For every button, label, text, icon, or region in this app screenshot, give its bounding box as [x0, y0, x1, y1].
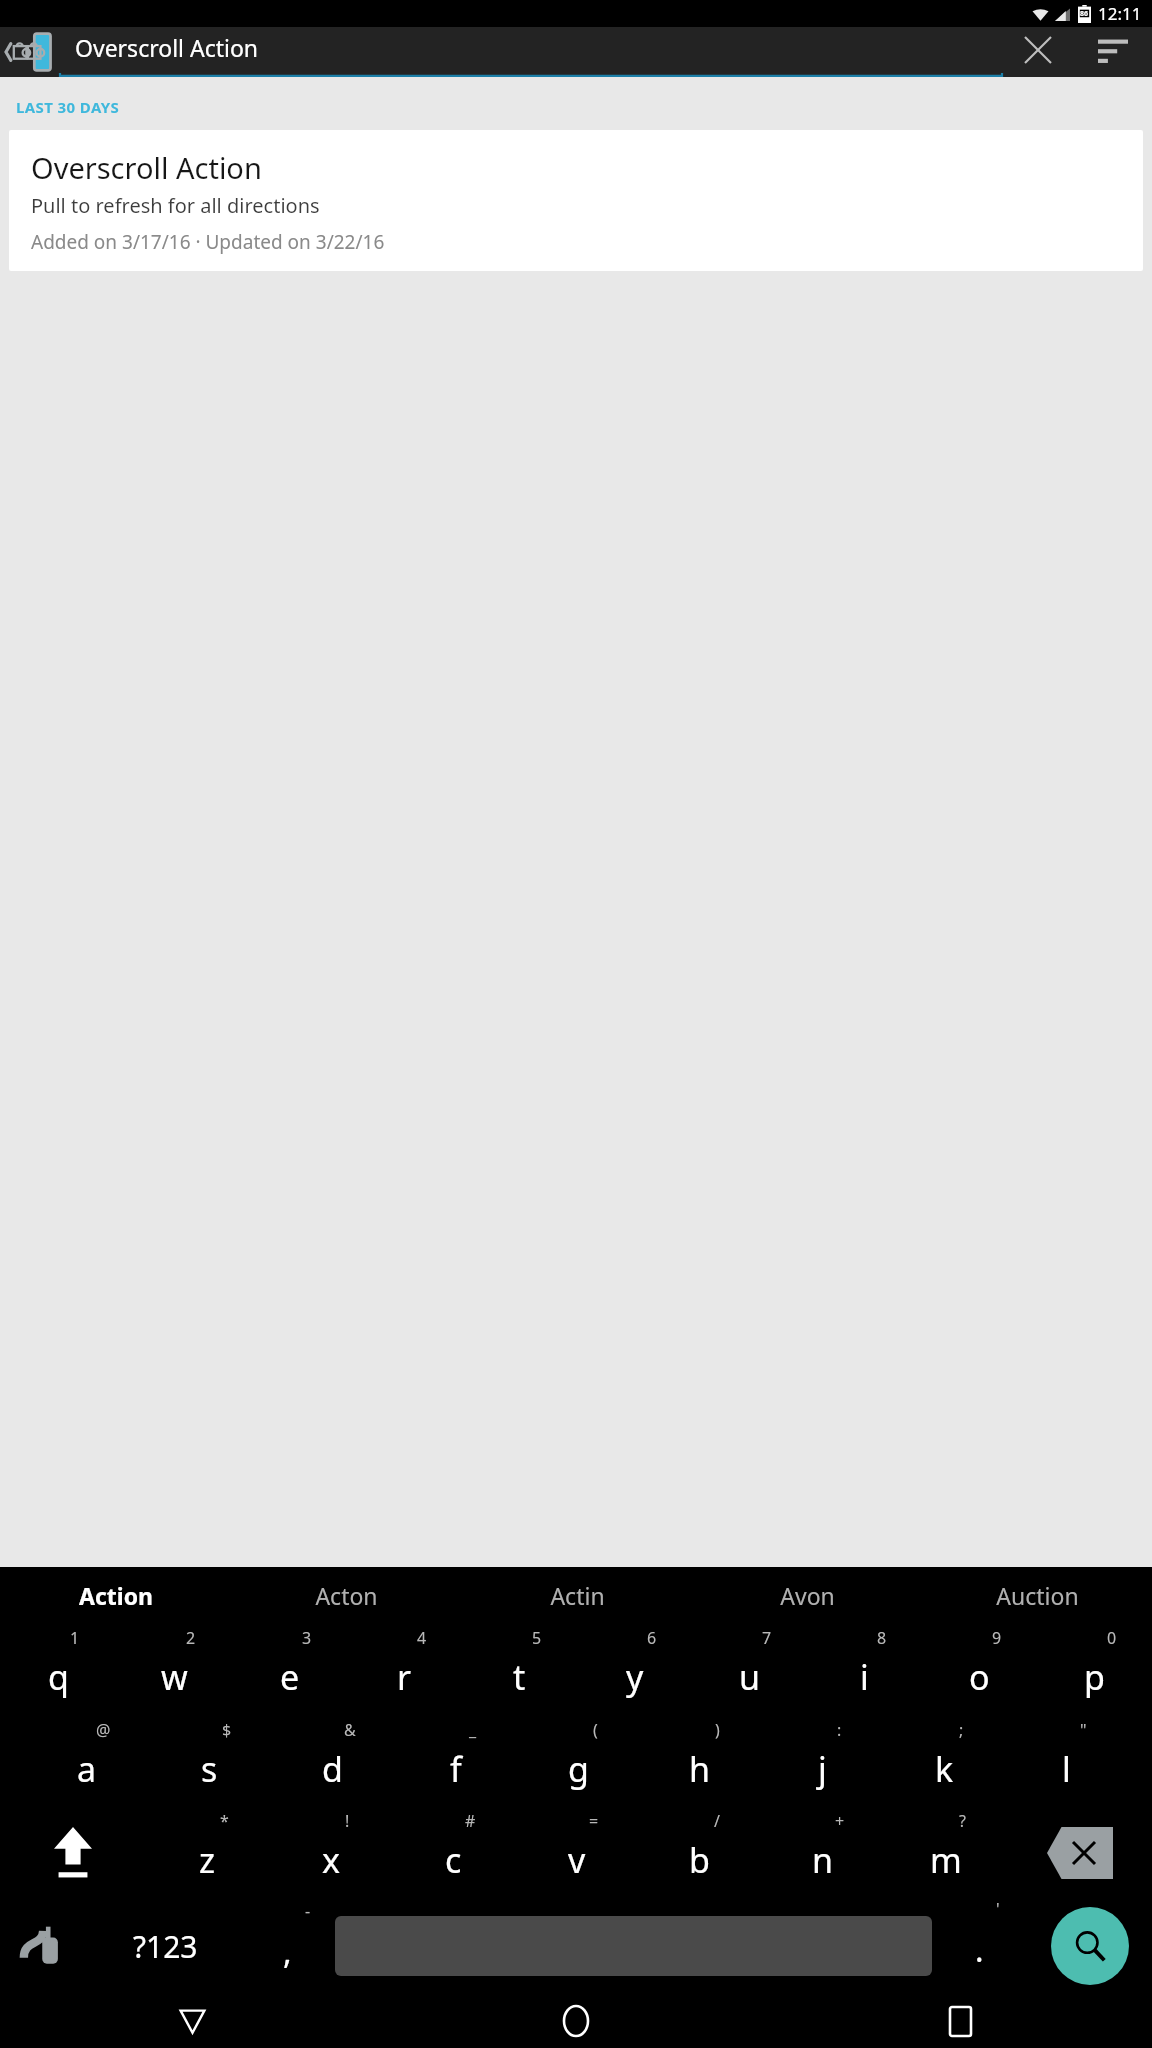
staticText: p [1084, 1654, 1105, 1700]
button[interactable]: Recents [768, 1994, 1152, 2048]
staticText: f [450, 1746, 462, 1792]
button[interactable]: 5 [462, 1624, 577, 1716]
button[interactable]: 2 [116, 1624, 232, 1716]
staticText: e [280, 1654, 300, 1700]
staticText: 86 [1080, 9, 1089, 19]
button[interactable]: : [761, 1716, 883, 1807]
staticText: . [975, 1928, 984, 1972]
staticText: Auction [996, 1580, 1079, 1611]
staticText: 9 [992, 1627, 1002, 1649]
button[interactable]: 4 [347, 1624, 462, 1716]
button[interactable]: " [1005, 1716, 1127, 1807]
button[interactable]: 8 [807, 1624, 922, 1716]
staticText: ' [996, 1898, 1000, 1920]
staticText: a [77, 1746, 97, 1792]
staticText: w [161, 1654, 188, 1700]
button[interactable]: & [271, 1716, 394, 1807]
staticText: 3 [302, 1627, 312, 1649]
staticText: m [930, 1837, 962, 1883]
button[interactable]: $ [148, 1716, 271, 1807]
staticText: l [1062, 1746, 1071, 1792]
staticText: " [1080, 1719, 1087, 1741]
button[interactable]: Acton [231, 1567, 462, 1624]
staticText: v [568, 1837, 586, 1883]
staticText: Action [79, 1580, 153, 1611]
button[interactable]: ?123 [90, 1898, 240, 1994]
button[interactable]: Search [1051, 1907, 1129, 1985]
staticText: Overscroll Action [31, 148, 262, 187]
staticText: u [739, 1654, 761, 1700]
staticText: : [837, 1719, 842, 1741]
button[interactable]: Back [0, 1994, 384, 2048]
button[interactable]: Avon [692, 1567, 922, 1624]
button[interactable]: / [638, 1807, 761, 1898]
button[interactable]: 6 [577, 1624, 692, 1716]
staticText: ? [959, 1810, 966, 1832]
button[interactable]: # [392, 1807, 515, 1898]
button[interactable]: 3 [232, 1624, 347, 1716]
staticText: Avon [780, 1580, 835, 1611]
staticText: ) [715, 1719, 720, 1741]
button[interactable]: 1 [0, 1624, 116, 1716]
button[interactable]: 0 [1037, 1624, 1152, 1716]
staticText: & [344, 1719, 356, 1741]
staticText: _ [469, 1719, 477, 1741]
button[interactable]: Gesture typing [0, 1898, 90, 1994]
button[interactable]: ) [639, 1716, 761, 1807]
staticText: q [48, 1654, 69, 1700]
button[interactable]: Overscroll Action [60, 27, 1002, 77]
staticText: ; [959, 1719, 964, 1741]
button[interactable]: * [145, 1807, 269, 1898]
button[interactable]: Navigate up [0, 27, 60, 77]
button[interactable]: Sort [1074, 27, 1152, 77]
button[interactable]: Clear query [1002, 27, 1074, 77]
staticText: x [322, 1837, 340, 1883]
button[interactable]: Home [384, 1994, 768, 2048]
button[interactable]: 9 [922, 1624, 1037, 1716]
button[interactable]: _ [394, 1716, 517, 1807]
staticText: b [689, 1837, 710, 1883]
staticText: - [305, 1900, 311, 1922]
button[interactable]: ; [883, 1716, 1005, 1807]
staticText: Pull to refresh for all directions [31, 192, 320, 219]
button[interactable]: ( [517, 1716, 639, 1807]
staticText: y [626, 1654, 644, 1700]
button[interactable]: ' [932, 1898, 1027, 1994]
staticText: * [220, 1810, 229, 1832]
staticText: 12:11 [1098, 2, 1142, 25]
button[interactable]: - [240, 1898, 335, 1994]
staticText: Actin [550, 1580, 605, 1611]
button[interactable]: Overscroll Action [9, 130, 1143, 271]
staticText: c [445, 1837, 462, 1883]
staticText: i [860, 1654, 869, 1700]
staticText: @ [96, 1719, 111, 1741]
button[interactable]: 7 [692, 1624, 807, 1716]
staticText: Overscroll Action [75, 32, 259, 63]
button[interactable]: ! [269, 1807, 392, 1898]
button[interactable]: Shift [0, 1807, 145, 1898]
button[interactable]: @ [25, 1716, 148, 1807]
staticText: o [969, 1654, 990, 1700]
staticText: ( [593, 1719, 598, 1741]
button[interactable]: ? [884, 1807, 1007, 1898]
staticText: g [568, 1746, 589, 1792]
staticText: 6 [647, 1627, 657, 1649]
button[interactable]: = [515, 1807, 638, 1898]
staticText: 4 [417, 1627, 427, 1649]
staticText: 8 [877, 1627, 887, 1649]
button[interactable]: Auction [922, 1567, 1152, 1624]
staticText: = [589, 1810, 599, 1832]
button[interactable]: Actin [462, 1567, 692, 1624]
staticText: ?123 [133, 1926, 198, 1967]
button[interactable]: Backspace [1007, 1807, 1152, 1898]
button[interactable]: Action [0, 1567, 231, 1624]
staticText: Added on 3/17/16 · Updated on 3/22/16 [31, 229, 385, 255]
staticText: Acton [315, 1580, 378, 1611]
staticText: s [201, 1746, 218, 1792]
staticText: j [818, 1746, 827, 1792]
staticText: / [714, 1810, 720, 1832]
staticText: 7 [762, 1627, 772, 1649]
button[interactable]: + [761, 1807, 884, 1898]
staticText: t [513, 1654, 526, 1700]
